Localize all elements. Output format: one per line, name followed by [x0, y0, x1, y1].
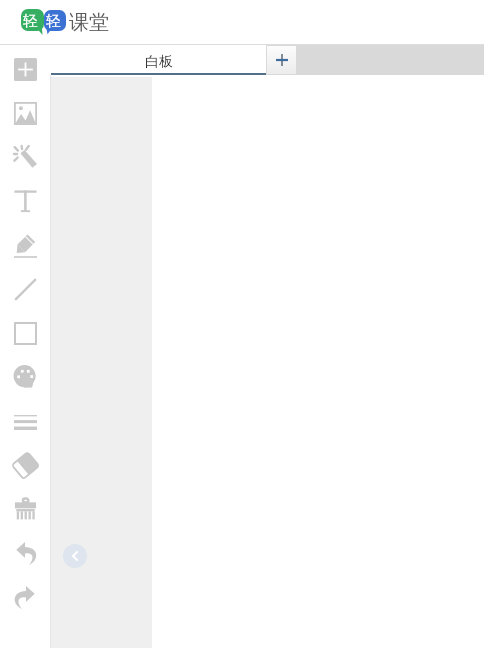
button[interactable]: Add element [6, 50, 44, 88]
staticText: 轻 [23, 12, 38, 31]
staticText: 白板 [145, 53, 173, 71]
button[interactable]: Collapse page panel [63, 544, 87, 568]
button[interactable]: Eraser [6, 446, 44, 484]
button[interactable]: Stroke width [6, 402, 44, 440]
button[interactable]: Magic wand [6, 138, 44, 176]
button[interactable]: 白板 [51, 45, 266, 75]
staticText: 轻 [46, 12, 61, 31]
button[interactable]: Undo [6, 534, 44, 572]
button[interactable]: New page [267, 46, 296, 74]
staticText: 课堂 [69, 10, 109, 35]
button[interactable]: Line [6, 270, 44, 308]
button[interactable]: 轻轻课堂 [20, 8, 112, 36]
button[interactable]: Text [6, 182, 44, 220]
button[interactable]: Pencil [6, 226, 44, 264]
button[interactable]: Insert image [6, 94, 44, 132]
button[interactable]: Redo [6, 578, 44, 616]
button[interactable]: Color palette [6, 358, 44, 396]
button[interactable]: Clear all [6, 490, 44, 528]
button[interactable]: Rectangle [6, 314, 44, 352]
